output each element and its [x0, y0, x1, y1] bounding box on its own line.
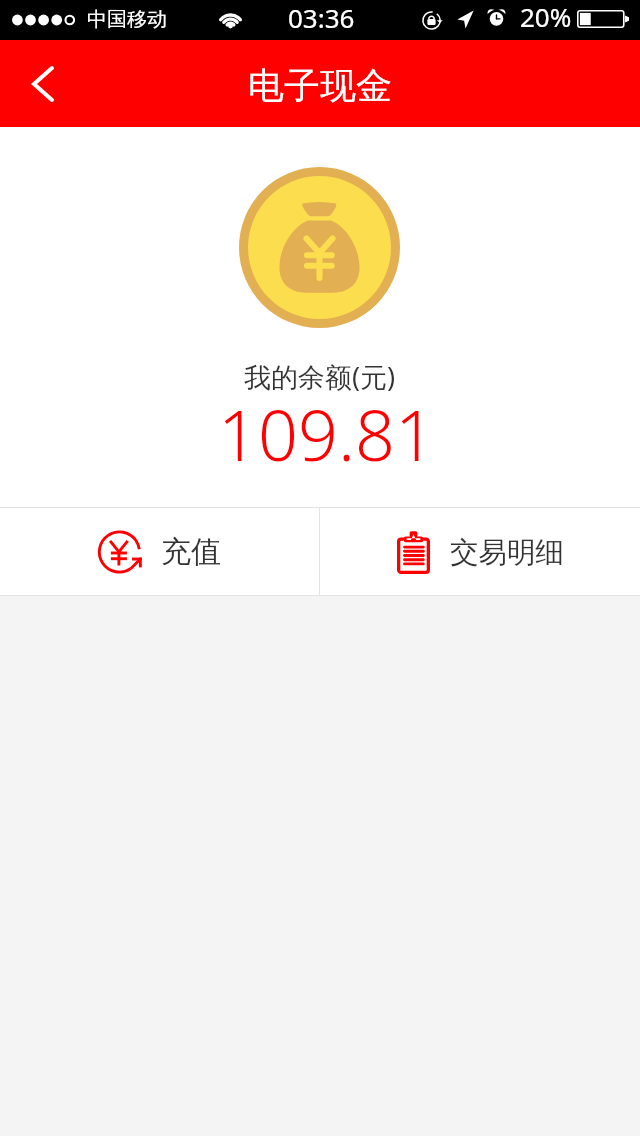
staticText: 交易明细 — [450, 535, 564, 571]
staticText: 中国移动 — [87, 7, 167, 32]
button[interactable]: 充值 — [0, 508, 319, 596]
staticText: 充值 — [161, 533, 221, 571]
staticText: 20% — [520, 0, 572, 34]
staticText: 我的余额(元) — [244, 358, 396, 395]
button[interactable]: 交易明细 — [320, 508, 640, 596]
staticText: 109.81 — [218, 386, 435, 481]
staticText: 03:36 — [288, 0, 355, 35]
staticText: 电子现金 — [248, 63, 392, 108]
button[interactable]: Back — [0, 40, 86, 127]
